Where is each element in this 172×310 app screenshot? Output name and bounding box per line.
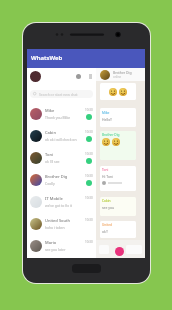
staticText: Cabin <box>45 130 56 135</box>
button[interactable]: IT Mobile <box>27 191 96 213</box>
staticText: IT Mobile <box>45 196 63 201</box>
staticText: 10:30 <box>85 152 93 156</box>
staticText: United <box>102 223 113 227</box>
button[interactable] <box>100 83 136 100</box>
staticText: 10:30 <box>85 240 93 244</box>
staticText: haha i taken <box>45 225 65 230</box>
staticText: 10:30 <box>85 108 93 112</box>
button[interactable]: Brother Dig <box>100 131 136 160</box>
button[interactable]: New chat <box>115 247 124 256</box>
button[interactable]: United South <box>27 213 96 235</box>
staticText: 10:30 <box>85 174 93 178</box>
staticText: Thank you Mike <box>45 115 71 120</box>
staticText: 10:30 <box>85 196 93 200</box>
staticText: ok!! <box>102 229 108 234</box>
button[interactable]: Search or start new chat <box>30 90 93 98</box>
staticText: see you <box>102 205 115 210</box>
staticText: Coolly <box>45 181 55 186</box>
button[interactable]: United <box>100 221 136 238</box>
staticText: online <box>113 75 122 79</box>
staticText: Hello!! <box>102 117 113 122</box>
staticText: 10:30 <box>85 130 93 134</box>
staticText: see you later <box>45 247 66 252</box>
staticText: 10:30 <box>85 218 93 222</box>
staticText: Brother Dig <box>45 174 68 179</box>
staticText: Mike <box>45 108 55 113</box>
staticText: Toni <box>102 168 109 172</box>
button[interactable]: Cabin <box>27 125 96 147</box>
staticText: ok i'll see <box>45 159 60 164</box>
button[interactable]: Mike <box>100 108 136 127</box>
button[interactable]: Brother Dig <box>96 68 145 81</box>
button[interactable]: Toni <box>100 166 136 191</box>
staticText: Mario <box>45 240 57 245</box>
staticText: Brother Dig <box>113 70 132 75</box>
staticText: ok ok i will check on this <box>45 137 83 142</box>
staticText: United South <box>45 218 71 223</box>
button[interactable]: WhatsWeb <box>27 49 145 68</box>
staticText: we've got to fix it <box>45 203 73 208</box>
button[interactable]: Mike <box>27 103 96 125</box>
button[interactable]: Status <box>76 74 81 79</box>
button[interactable]: Brother Dig <box>27 169 96 191</box>
staticText: Toni <box>45 152 53 157</box>
staticText: Hi Toni <box>102 174 113 179</box>
staticText: Search or start new chat <box>39 92 78 97</box>
button[interactable]: Mario <box>27 235 96 257</box>
staticText: Brother Dig <box>102 133 120 137</box>
staticText: Mike <box>102 111 110 115</box>
staticText: WhatsWeb <box>31 54 63 62</box>
button[interactable]: Toni <box>27 147 96 169</box>
staticText: Cabin <box>102 199 111 203</box>
button[interactable]: Cabin <box>100 197 136 216</box>
